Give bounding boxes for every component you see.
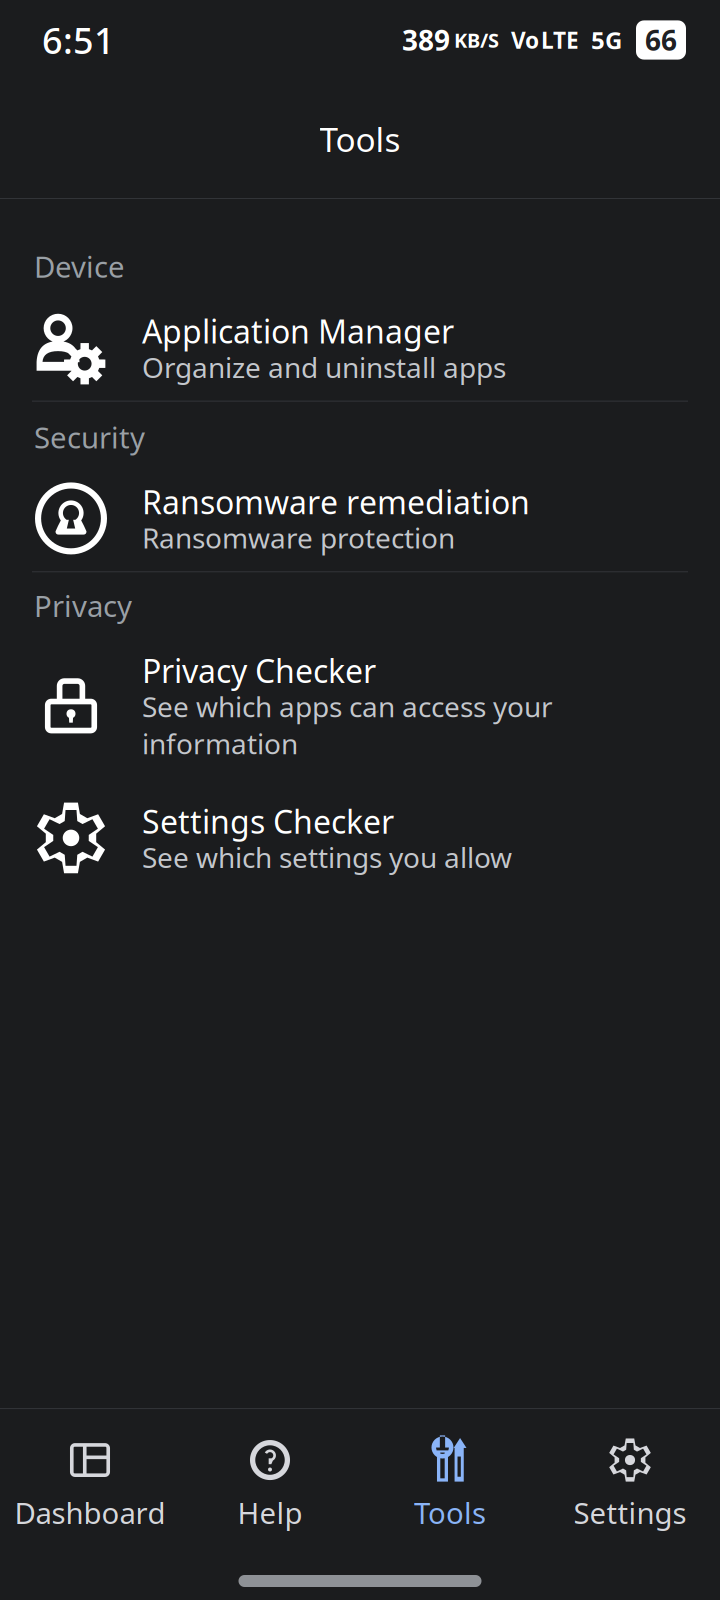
staticText: Dashboard xyxy=(14,1493,165,1532)
staticText: KB/S xyxy=(454,27,499,53)
staticText: Privacy xyxy=(34,586,132,625)
staticText: Settings xyxy=(573,1493,686,1532)
staticText: 6:51 xyxy=(42,16,115,64)
button[interactable]: Tools xyxy=(360,1409,540,1532)
button[interactable]: Privacy Checker xyxy=(0,625,720,762)
button[interactable]: Settings xyxy=(540,1409,720,1532)
staticText: Application Manager xyxy=(142,310,454,352)
staticText: Organize and uninstall apps xyxy=(142,348,506,386)
staticText: Vo xyxy=(511,25,539,55)
button[interactable]: Help xyxy=(180,1409,360,1532)
staticText: Device xyxy=(34,247,125,286)
staticText: LTE xyxy=(541,25,579,55)
button[interactable]: Dashboard xyxy=(0,1409,180,1532)
staticText: 389 xyxy=(402,21,450,59)
staticText: Settings Checker xyxy=(142,800,394,843)
button[interactable]: Settings Checker xyxy=(0,762,720,876)
staticText: Ransomware protection xyxy=(142,519,455,556)
staticText: Security xyxy=(34,418,145,457)
staticText: Tools xyxy=(319,117,400,161)
staticText: Ransomware remediation xyxy=(142,481,530,523)
staticText: See which settings you allow xyxy=(142,839,512,876)
staticText: 5G xyxy=(591,24,622,56)
staticText: See which apps can access your informati… xyxy=(142,688,553,762)
staticText: Privacy Checker xyxy=(142,649,376,692)
button[interactable]: Application Manager xyxy=(0,286,720,401)
button[interactable]: Ransomware remediation xyxy=(0,457,720,571)
staticText: Tools xyxy=(414,1493,486,1532)
staticText: 66 xyxy=(645,21,677,59)
staticText: Help xyxy=(237,1493,302,1532)
